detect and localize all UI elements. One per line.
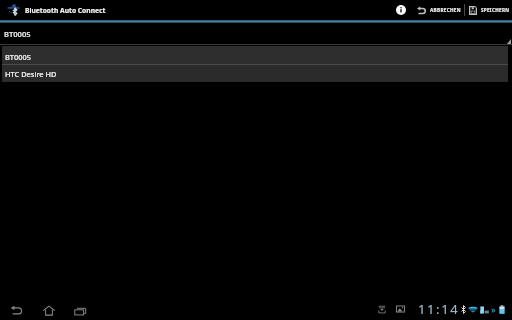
staticText: Bluetooth Auto Connect bbox=[25, 6, 106, 15]
button[interactable]: Info bbox=[392, 0, 409, 20]
staticText: ABBRECHEN bbox=[430, 7, 461, 13]
button[interactable]: HTC Desire HD bbox=[2, 65, 508, 82]
staticText: SPEICHERN bbox=[481, 7, 510, 13]
button[interactable]: ABBRECHEN bbox=[417, 0, 461, 20]
staticText: 11:14 bbox=[418, 300, 460, 318]
button[interactable]: Back bbox=[5, 299, 27, 320]
button[interactable]: Home bbox=[38, 299, 60, 320]
button[interactable]: BT0005 bbox=[2, 46, 508, 64]
staticText: BT0005 bbox=[5, 52, 31, 62]
button[interactable]: Bluetooth Auto Connect bbox=[0, 0, 112, 20]
staticText: » bbox=[491, 303, 496, 315]
button[interactable]: BT0005 bbox=[0, 23, 512, 45]
staticText: BT0005 bbox=[4, 29, 31, 39]
staticText: HTC Desire HD bbox=[5, 69, 57, 79]
button[interactable]: SPEICHERN bbox=[469, 0, 510, 20]
button[interactable]: Recent apps bbox=[69, 299, 91, 320]
